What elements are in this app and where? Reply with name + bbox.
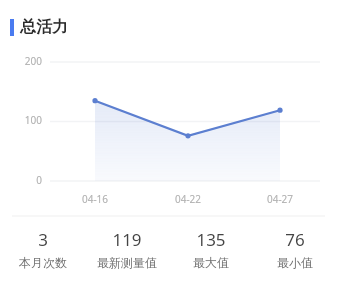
staticText: 04-16 — [71, 192, 119, 206]
staticText: 135 — [196, 228, 226, 251]
button[interactable]: 3 — [0, 228, 85, 270]
staticText: 最新测量值 — [97, 255, 157, 270]
staticText: 最大值 — [193, 255, 229, 270]
button[interactable]: 135 — [169, 228, 253, 270]
button[interactable]: 119 — [85, 228, 169, 270]
staticText: 100 — [0, 113, 42, 127]
staticText: 3 — [38, 228, 48, 251]
staticText: 200 — [0, 54, 42, 68]
staticText: 本月次数 — [19, 255, 67, 270]
staticText: 0 — [0, 173, 42, 187]
staticText: 04-22 — [164, 192, 212, 206]
staticText: 最小值 — [277, 255, 313, 270]
button[interactable]: 总活力 — [10, 17, 68, 37]
staticText: 119 — [112, 228, 142, 251]
button[interactable]: 76 — [253, 228, 337, 270]
staticText: 76 — [285, 228, 305, 251]
staticText: 总活力 — [20, 17, 68, 37]
staticText: 04-27 — [256, 192, 304, 206]
